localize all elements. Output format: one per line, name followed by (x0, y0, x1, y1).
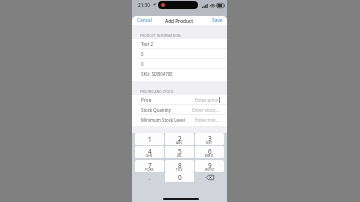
button[interactable]: 3 (195, 133, 224, 145)
staticText: Cancel (137, 17, 152, 24)
staticText: . (149, 174, 151, 181)
button[interactable]: 0 (132, 49, 227, 59)
staticText: 2 (178, 134, 182, 143)
staticText: 4 (148, 147, 152, 156)
staticText: 0 (141, 51, 144, 57)
staticText: 1 (148, 135, 152, 144)
button[interactable]: 8 (165, 160, 194, 172)
staticText: Stock Quantity (141, 107, 172, 113)
button[interactable]: Test 2 (132, 39, 227, 49)
button[interactable]: Delete (195, 172, 224, 182)
staticText: ABC (176, 141, 183, 145)
staticText: Add Product (165, 18, 194, 24)
staticText: 8 (178, 161, 182, 170)
button[interactable]: 9 (195, 160, 224, 172)
staticText: PRODUCT INFORMATION (140, 34, 181, 38)
button[interactable]: Stock Quantity (132, 105, 227, 115)
staticText: Price (141, 97, 152, 103)
staticText: Enter stock... (192, 107, 220, 113)
staticText: 7 (148, 161, 152, 170)
staticText: PQRS (145, 168, 154, 172)
staticText: Save (212, 17, 223, 24)
staticText: 3 (208, 134, 212, 143)
button[interactable]: 7 (135, 160, 164, 172)
staticText: 0 (141, 61, 144, 67)
button[interactable]: 4 (135, 146, 164, 158)
button[interactable]: 0 (132, 59, 227, 69)
staticText: 0 (178, 173, 182, 182)
staticText: Enter price (195, 97, 218, 103)
button[interactable]: 5 (165, 146, 194, 158)
button[interactable]: 0 (165, 172, 194, 182)
staticText: Test 2 (141, 41, 153, 47)
button[interactable]: 2 (165, 133, 194, 145)
button[interactable]: Cancel (132, 16, 157, 25)
button[interactable]: Save (208, 16, 227, 25)
staticText: 9 (208, 161, 212, 170)
button[interactable]: Price (132, 95, 227, 105)
staticText: GHI (146, 154, 153, 158)
staticText: Minimum Stock Level (141, 117, 185, 123)
button[interactable]: 6 (195, 146, 224, 158)
staticText: DEF (206, 141, 213, 145)
staticText: 21:30 (138, 2, 150, 8)
button[interactable]: 1 (135, 133, 164, 145)
staticText: TUV (176, 168, 183, 172)
staticText: SKU: SDB0470E (141, 71, 173, 77)
staticText: MNO (205, 154, 214, 158)
staticText: 6 (208, 147, 212, 156)
button[interactable]: Minimum Stock Level (132, 115, 227, 125)
staticText: WXYZ (205, 168, 215, 172)
staticText: 5 (178, 147, 182, 156)
staticText: Enter min... (195, 117, 220, 123)
staticText: JKL (177, 154, 183, 158)
button[interactable]: SKU: SDB0470E (132, 69, 227, 79)
staticText: PRICING AND STOCK (140, 90, 174, 94)
